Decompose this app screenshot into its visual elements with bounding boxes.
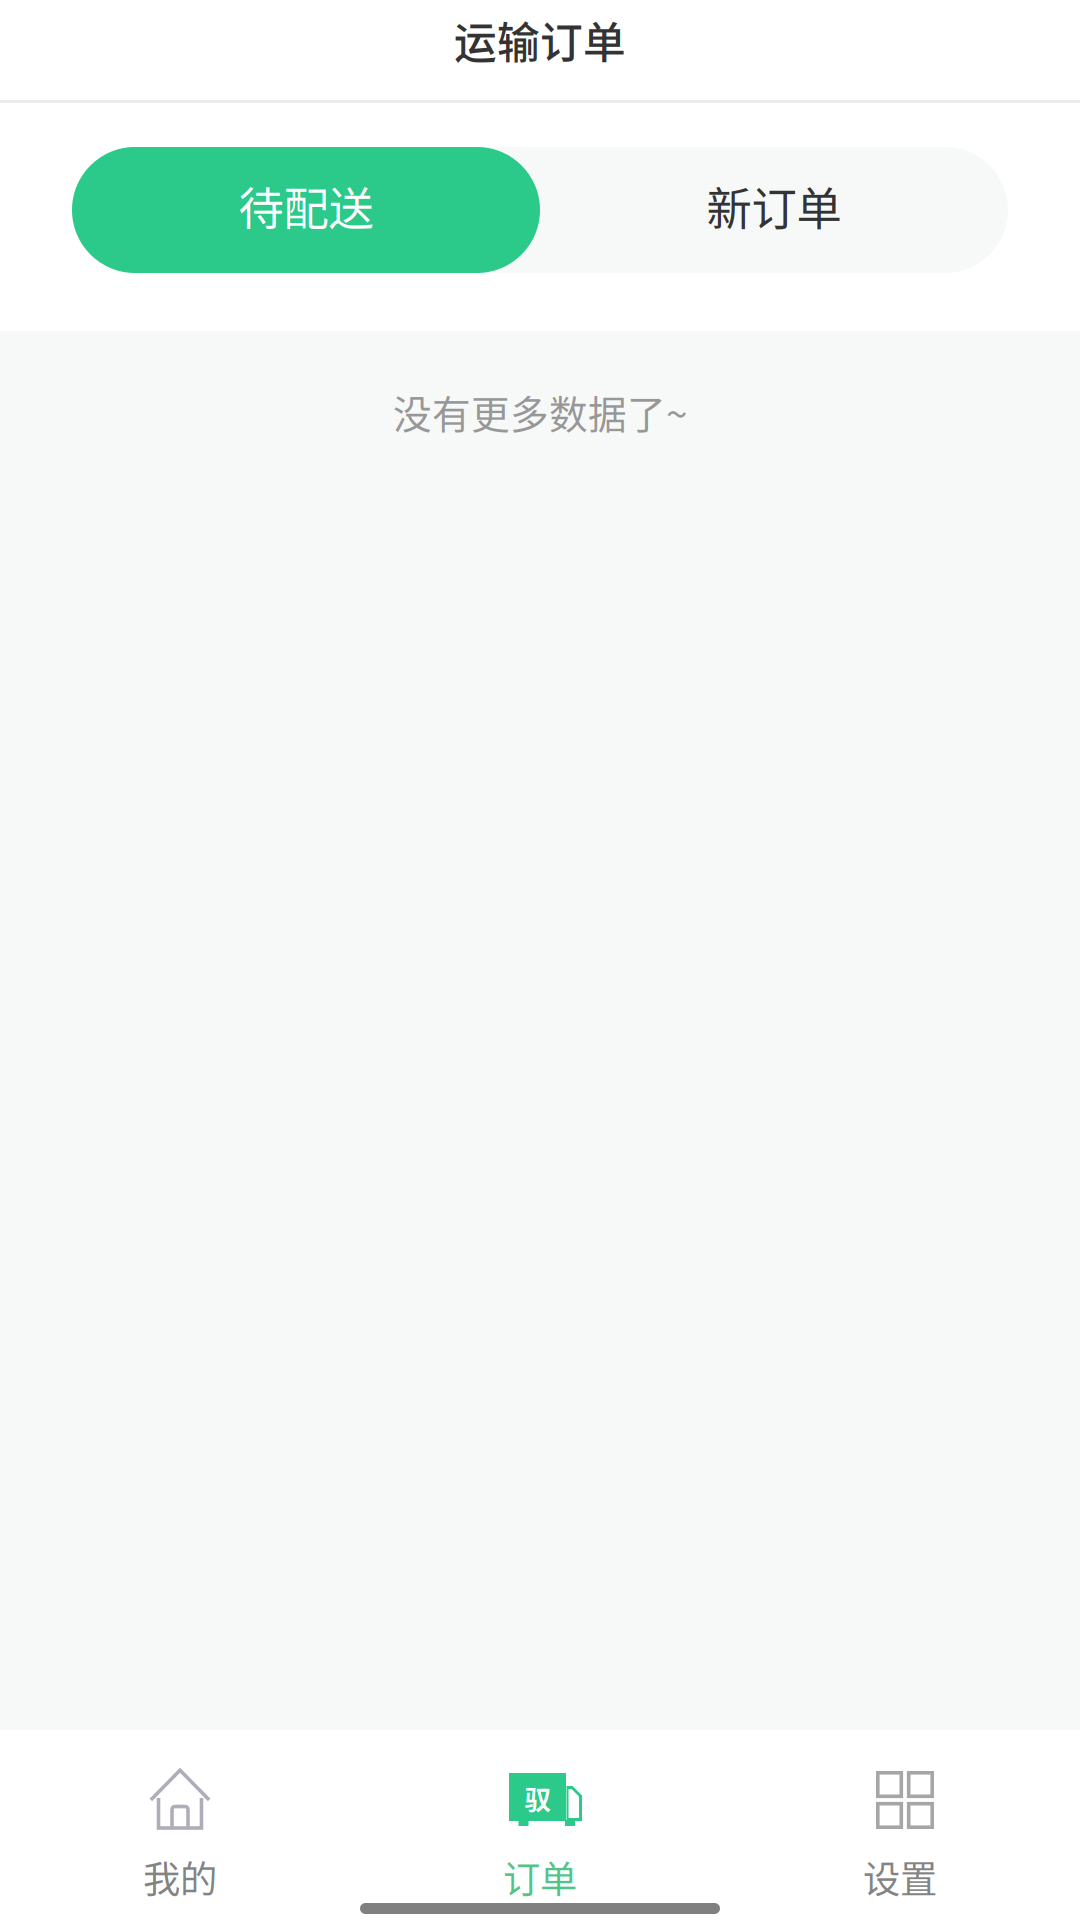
button[interactable]: 订单 [360,1730,720,1917]
staticText: 新订单 [706,173,841,239]
staticText: 订单 [503,1850,577,1904]
staticText: 我的 [143,1850,217,1904]
staticText: 运输订单 [454,9,626,71]
staticText: 待配送 [238,173,373,239]
button[interactable]: 设置 [720,1730,1080,1917]
staticText: 设置 [863,1850,937,1904]
button[interactable]: 我的 [0,1730,360,1917]
button[interactable]: 新订单 [540,147,1008,273]
button[interactable]: 待配送 [72,147,540,273]
staticText: 没有更多数据了~ [393,384,687,440]
